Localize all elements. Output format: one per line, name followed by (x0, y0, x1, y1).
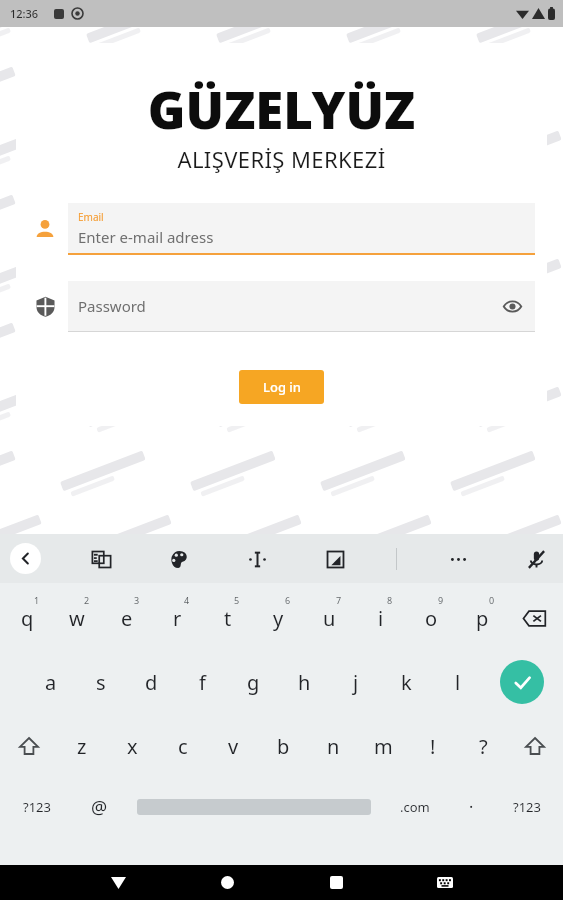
button[interactable]: 0 (457, 586, 508, 650)
button[interactable]: j (330, 650, 381, 714)
button[interactable]: Theme (162, 542, 196, 576)
button[interactable]: Shift (508, 714, 561, 778)
staticText: u (323, 605, 336, 632)
staticText: 2 (84, 594, 90, 606)
staticText: e (121, 605, 133, 632)
staticText: Password (78, 296, 146, 316)
staticText: l (455, 669, 461, 696)
button[interactable]: .com (381, 778, 449, 836)
staticText: q (21, 605, 34, 632)
button[interactable]: Back (97, 865, 139, 900)
button[interactable]: l (432, 650, 483, 714)
staticText: 9 (438, 594, 444, 606)
staticText: m (374, 733, 393, 760)
button[interactable]: c (158, 714, 208, 778)
staticText: p (476, 605, 489, 632)
button[interactable]: Shift (2, 714, 56, 778)
staticText: GÜZELYÜZ (16, 74, 547, 143)
staticText: ?123 (513, 798, 541, 816)
button[interactable]: 5 (202, 586, 253, 650)
button[interactable]: Recent apps (315, 865, 357, 900)
staticText: 0 (489, 594, 495, 606)
button[interactable]: a (26, 650, 76, 714)
button[interactable]: Log in (239, 370, 324, 404)
button[interactable]: @ (71, 778, 127, 836)
button[interactable]: g (228, 650, 279, 714)
staticText: 5 (234, 594, 240, 606)
staticText: k (401, 669, 412, 696)
button[interactable]: d (126, 650, 177, 714)
staticText: n (327, 733, 340, 760)
button[interactable]: 2 (52, 586, 102, 650)
staticText: d (145, 669, 158, 696)
staticText: 12:36 (10, 6, 39, 21)
button[interactable]: 4 (152, 586, 202, 650)
button[interactable]: m (358, 714, 408, 778)
button[interactable]: Email (68, 203, 535, 255)
button[interactable]: Space (127, 778, 381, 836)
button[interactable]: Sticker (318, 542, 352, 576)
button[interactable]: Text editing (240, 542, 274, 576)
staticText: s (96, 669, 106, 696)
button[interactable]: More options (441, 542, 475, 576)
staticText: ? (479, 733, 488, 760)
staticText: t (224, 605, 232, 632)
staticText: f (199, 669, 206, 696)
button[interactable]: 1 (2, 586, 52, 650)
button[interactable]: z (56, 714, 107, 778)
staticText: z (77, 733, 87, 760)
button[interactable]: f (177, 650, 228, 714)
button[interactable]: 3 (102, 586, 152, 650)
button[interactable]: Home (206, 865, 248, 900)
staticText: @ (91, 795, 108, 820)
staticText: 8 (387, 594, 393, 606)
staticText: ?123 (23, 798, 51, 816)
staticText: h (298, 669, 311, 696)
button[interactable]: ?123 (493, 778, 561, 836)
staticText: g (247, 669, 260, 696)
staticText: ALIŞVERİŞ MERKEZİ (16, 144, 547, 174)
button[interactable]: x (107, 714, 158, 778)
staticText: x (127, 733, 138, 760)
button[interactable]: Backspace (508, 586, 561, 650)
button[interactable]: Show password (497, 291, 527, 321)
button[interactable]: h (279, 650, 330, 714)
button[interactable]: k (381, 650, 432, 714)
button[interactable]: n (308, 714, 358, 778)
button[interactable]: Microphone off (519, 542, 553, 576)
staticText: b (277, 733, 290, 760)
button[interactable]: ! (408, 714, 458, 778)
button[interactable]: Switch keyboard (424, 865, 466, 900)
staticText: .com (400, 798, 430, 816)
staticText: c (178, 733, 188, 760)
staticText: 1 (34, 594, 40, 606)
staticText: r (173, 605, 182, 632)
staticText: ! (430, 733, 436, 760)
button[interactable]: s (76, 650, 126, 714)
button[interactable]: b (258, 714, 308, 778)
button[interactable]: 9 (406, 586, 457, 650)
staticText: Log in (263, 378, 301, 396)
staticText: Email (78, 210, 104, 224)
button[interactable]: v (208, 714, 258, 778)
button[interactable]: Enter (483, 650, 561, 714)
button[interactable]: 6 (253, 586, 304, 650)
staticText: Enter e-mail adress (78, 227, 214, 247)
staticText: 7 (336, 594, 342, 606)
staticText: 4 (184, 594, 190, 606)
button[interactable]: 8 (355, 586, 406, 650)
staticText: j (353, 669, 359, 696)
button[interactable]: · (449, 778, 493, 836)
staticText: 3 (134, 594, 140, 606)
staticText: a (45, 669, 57, 696)
staticText: o (425, 605, 438, 632)
button[interactable]: ? (458, 714, 508, 778)
staticText: v (228, 733, 239, 760)
button[interactable]: ?123 (2, 778, 71, 836)
button[interactable]: Translate (84, 542, 118, 576)
button[interactable]: 7 (304, 586, 355, 650)
staticText: · (469, 796, 474, 818)
staticText: i (378, 605, 384, 632)
button[interactable]: Password (68, 281, 535, 331)
button[interactable]: Back (10, 543, 41, 574)
